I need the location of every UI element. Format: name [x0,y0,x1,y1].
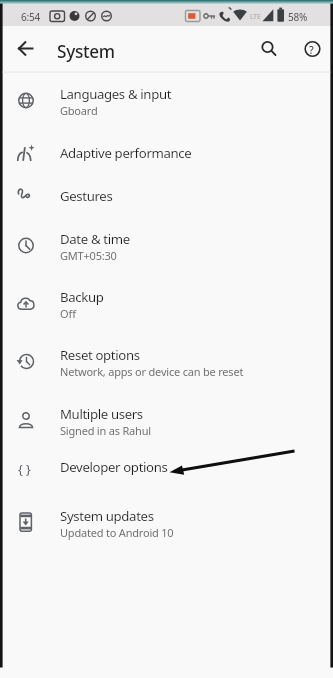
staticText: 58% [288,10,308,24]
button[interactable] [3,275,330,331]
staticText: Off [60,306,76,321]
staticText: GMT+05:30 [60,248,117,263]
staticText: Multiple users [60,405,143,423]
staticText: System updates [60,507,154,525]
staticText: { } [18,461,31,478]
button[interactable] [296,33,328,65]
button[interactable] [3,443,330,489]
staticText: Languages & input [60,85,172,103]
button[interactable] [3,334,330,390]
button[interactable] [10,33,42,65]
button[interactable] [3,73,330,129]
staticText: System [57,40,115,63]
button[interactable] [3,129,330,175]
button[interactable] [3,172,330,218]
staticText: Gboard [60,103,98,118]
staticText: 6:54 [21,10,41,24]
staticText: Backup [60,288,104,306]
staticText: Signed in as Rahul [60,423,151,438]
staticText: LTE [250,12,261,21]
button[interactable] [3,494,330,550]
staticText: Gestures [60,187,113,205]
staticText: ? [309,43,314,57]
button[interactable] [3,218,330,274]
staticText: Network, apps or device can be reset [60,364,244,379]
staticText: Updated to Android 10 [60,525,174,540]
button[interactable] [252,33,284,65]
button[interactable] [3,392,330,448]
staticText: Developer options [60,458,168,476]
staticText: Date & time [60,230,130,248]
staticText: Reset options [60,346,140,364]
staticText: Adaptive performance [60,144,192,162]
